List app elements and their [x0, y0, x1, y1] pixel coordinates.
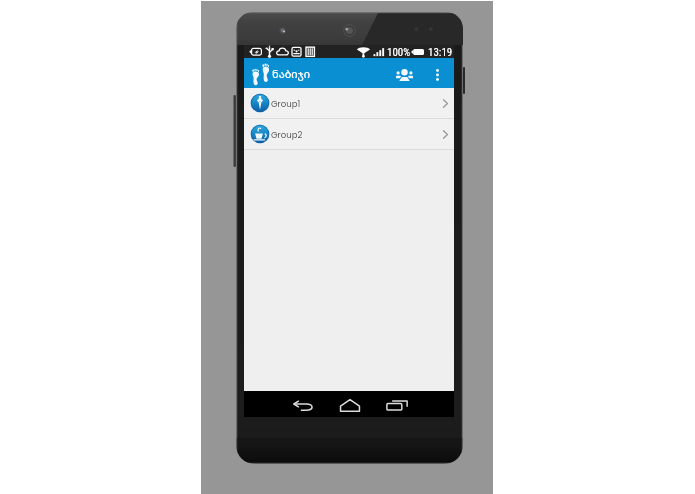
- staticText: ნაბიჯი: [272, 66, 311, 81]
- button[interactable]: Recents: [383, 393, 411, 417]
- staticText: Group1: [271, 98, 301, 110]
- staticText: Group2: [271, 129, 303, 141]
- button[interactable]: Group1: [244, 88, 454, 118]
- button[interactable]: Group2: [244, 119, 454, 149]
- button[interactable]: Back: [289, 395, 317, 416]
- staticText: 13:19: [428, 46, 453, 59]
- button[interactable]: Home: [336, 393, 364, 417]
- button[interactable]: Groups: [392, 65, 417, 85]
- staticText: 100%: [387, 46, 411, 59]
- button[interactable]: More options: [429, 65, 445, 85]
